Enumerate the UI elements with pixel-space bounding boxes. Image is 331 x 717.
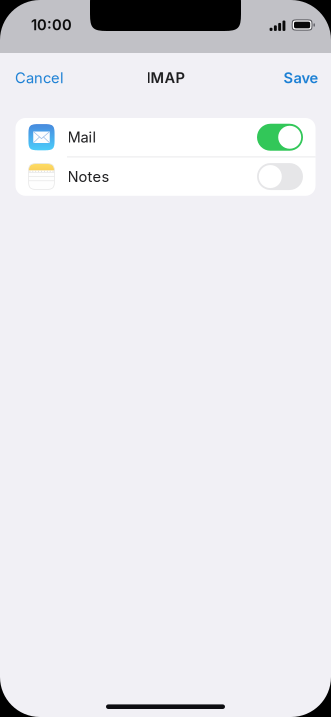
staticText: IMAP [146, 69, 184, 87]
button[interactable]: Save [283, 69, 318, 87]
button[interactable]: Notes [15, 157, 315, 196]
staticText: Notes [67, 168, 109, 185]
staticText: Cancel [15, 69, 64, 87]
staticText: Mail [67, 129, 96, 146]
button[interactable]: Mail [15, 118, 315, 156]
staticText: 10:00 [31, 16, 72, 34]
button[interactable]: Cancel [15, 69, 64, 87]
staticText: Save [283, 69, 318, 87]
